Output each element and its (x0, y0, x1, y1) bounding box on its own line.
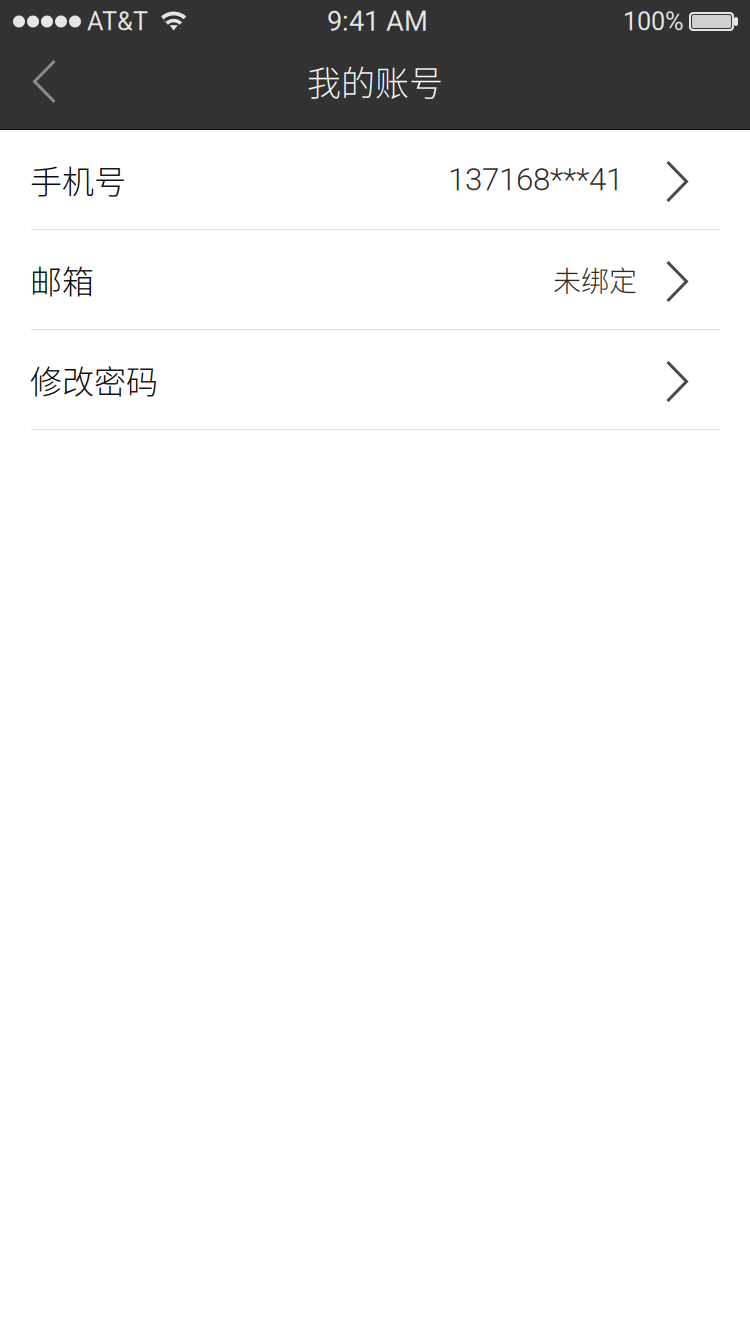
staticText: 修改密码 (30, 356, 158, 403)
staticText: 137168***41 (448, 161, 623, 198)
staticText: 手机号 (30, 156, 126, 203)
button[interactable]: 修改密码 (0, 330, 750, 430)
button[interactable]: 手机号 (0, 130, 750, 230)
staticText: 100% (623, 7, 684, 36)
staticText: 未绑定 (553, 259, 637, 300)
staticText: 我的账号 (307, 56, 443, 106)
staticText: 邮箱 (30, 256, 94, 303)
button[interactable]: Back (0, 40, 120, 129)
staticText: 9:41 AM (327, 5, 428, 37)
staticText: AT&T (87, 7, 148, 36)
button[interactable]: 邮箱 (0, 230, 750, 330)
